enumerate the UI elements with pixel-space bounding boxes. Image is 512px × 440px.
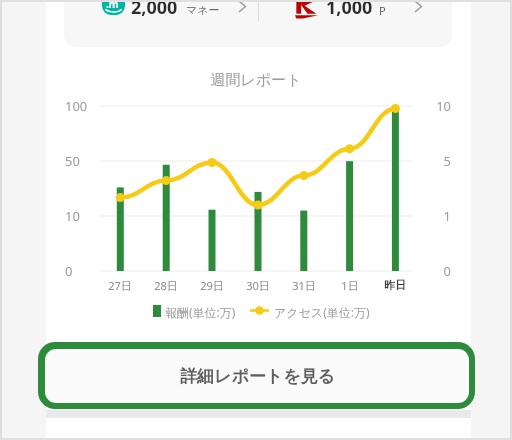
staticText: アクセス(単位:万) (274, 304, 370, 320)
button[interactable]: 詳細レポートを見る (38, 342, 475, 409)
staticText: 2,000 (131, 0, 178, 20)
other: 楽天ポイント (295, 0, 317, 19)
staticText: 50 (65, 152, 99, 170)
staticText: 報酬(単位:万) (165, 304, 236, 320)
staticText: 5 (423, 152, 451, 170)
staticText: 10 (65, 207, 99, 225)
button[interactable] (64, 0, 258, 47)
staticText: 詳細レポートを見る (180, 366, 335, 387)
staticText: 1日 (326, 278, 374, 293)
staticText: P (379, 3, 386, 18)
staticText: マネー (186, 3, 220, 17)
staticText: 昨日 (371, 278, 419, 292)
other: マネー (102, 0, 125, 15)
staticText: 100 (65, 97, 99, 115)
staticText: 28日 (142, 278, 190, 293)
staticText: .m (106, 0, 119, 11)
staticText: 0 (423, 262, 451, 280)
staticText: 31日 (280, 278, 328, 293)
staticText: 10 (423, 97, 451, 115)
staticText: 30日 (234, 278, 282, 293)
staticText: 0 (65, 262, 99, 280)
staticText: 1,000 (326, 0, 373, 20)
button[interactable] (259, 0, 452, 47)
staticText: 1 (423, 207, 451, 225)
staticText: 週間レポート (0, 71, 512, 90)
staticText: 29日 (188, 278, 236, 293)
staticText: 27日 (96, 278, 144, 293)
